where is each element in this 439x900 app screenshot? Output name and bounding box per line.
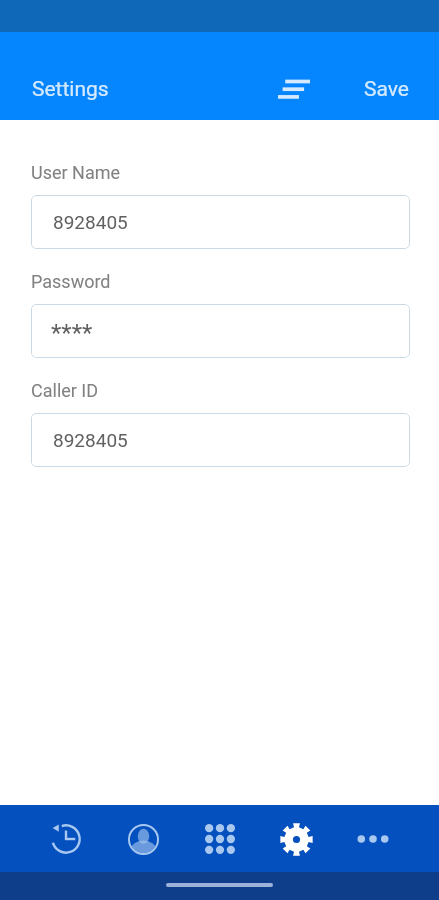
staticText: Password xyxy=(31,271,111,292)
button[interactable]: Save xyxy=(358,71,439,108)
staticText: Save xyxy=(364,77,409,102)
button[interactable]: Sort xyxy=(271,66,317,112)
button[interactable]: Dialpad xyxy=(192,811,248,867)
button[interactable]: 8928405 xyxy=(31,195,410,249)
staticText: 8928405 xyxy=(53,211,128,233)
button[interactable]: Contacts xyxy=(115,811,171,867)
staticText: 8928405 xyxy=(53,429,128,451)
button[interactable]: More options xyxy=(345,811,401,867)
staticText: Settings xyxy=(32,77,109,102)
button[interactable]: 8928405 xyxy=(31,413,410,467)
staticText: Caller ID xyxy=(31,380,99,401)
staticText: **** xyxy=(51,319,93,347)
staticText: User Name xyxy=(31,162,121,183)
button[interactable]: Recents xyxy=(38,811,94,867)
button[interactable]: Settings xyxy=(268,811,324,867)
button[interactable]: **** xyxy=(31,304,410,358)
